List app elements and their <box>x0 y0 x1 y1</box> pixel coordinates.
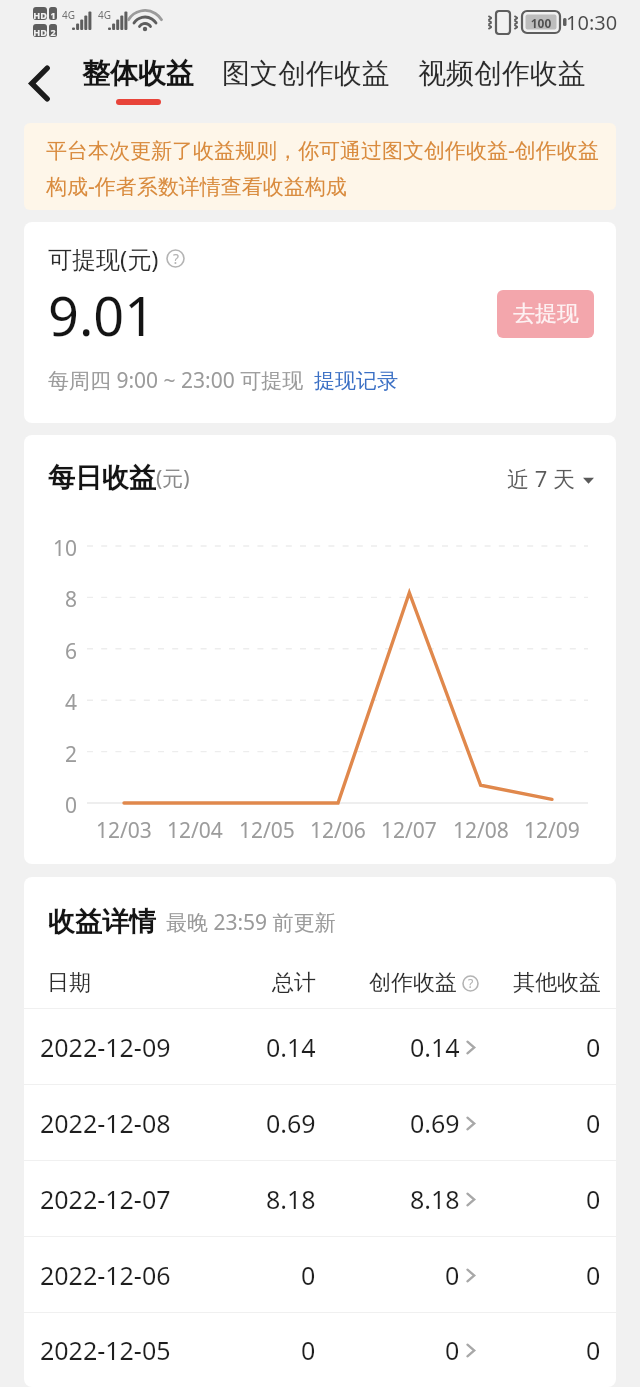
staticText: 2022-12-06 <box>40 1258 171 1292</box>
staticText: 视频创作收益 <box>418 56 586 91</box>
button[interactable]: 图文创作收益 <box>222 45 390 123</box>
staticText: 图文创作收益 <box>222 56 390 91</box>
button[interactable]: 2022-12-07 <box>24 1161 616 1236</box>
button[interactable]: 平台本次更新了收益规则，你可通过图文创作收益-创作收益 构成-作者系数详情查看收… <box>24 123 616 210</box>
button[interactable]: 近 7 天 <box>507 465 594 495</box>
staticText: 0 <box>586 1258 601 1292</box>
staticText: (元) <box>156 464 190 493</box>
button[interactable]: 2022-12-08 <box>24 1085 616 1160</box>
button[interactable]: 视频创作收益 <box>418 45 586 123</box>
button[interactable]: Help <box>166 249 185 268</box>
staticText: 2022-12-09 <box>40 1030 171 1064</box>
staticText: 9.01 <box>48 278 156 352</box>
staticText: 8.18 <box>266 1182 316 1216</box>
staticText: 0 <box>65 791 78 820</box>
staticText: 12/09 <box>524 816 580 845</box>
staticText: 日期 <box>47 969 91 997</box>
staticText: 100 <box>525 15 557 31</box>
staticText: 去提现 <box>513 300 579 328</box>
staticText: 12/03 <box>96 816 152 845</box>
staticText: 12/04 <box>167 816 223 845</box>
staticText: 0 <box>586 1106 601 1140</box>
staticText: 0 <box>445 1258 460 1292</box>
staticText: 整体收益 <box>82 56 194 91</box>
staticText: 0 <box>445 1333 460 1367</box>
staticText: 2 <box>49 26 57 38</box>
staticText: 0 <box>586 1182 601 1216</box>
staticText: 12/05 <box>239 816 295 845</box>
staticText: 0.14 <box>266 1030 316 1064</box>
staticText: 平台本次更新了收益规则，你可通过图文创作收益-创作收益 构成-作者系数详情查看收… <box>46 136 606 200</box>
staticText: 0 <box>301 1333 316 1367</box>
staticText: HD <box>33 9 47 21</box>
staticText: 2022-12-05 <box>40 1333 171 1367</box>
staticText: 其他收益 <box>513 969 601 997</box>
staticText: 0 <box>586 1030 601 1064</box>
staticText: 2022-12-08 <box>40 1106 171 1140</box>
staticText: 4 <box>65 688 78 717</box>
staticText: 4G <box>98 8 111 22</box>
staticText: 最晚 23:59 前更新 <box>166 908 336 937</box>
staticText: ? <box>173 249 179 268</box>
staticText: 12/08 <box>453 816 509 845</box>
button[interactable]: 2022-12-05 <box>24 1313 616 1387</box>
staticText: 总计 <box>272 969 316 997</box>
button[interactable]: Back <box>10 45 68 123</box>
staticText: 每日收益 <box>48 461 156 495</box>
staticText: 创作收益 <box>369 969 457 997</box>
staticText: 可提现(元) <box>48 242 159 275</box>
staticText: 0.69 <box>410 1106 460 1140</box>
staticText: 6 <box>65 637 78 666</box>
staticText: ? <box>468 975 474 992</box>
staticText: 提现记录 <box>314 368 398 394</box>
staticText: 10:30 <box>566 9 618 36</box>
button[interactable]: 提现记录 <box>314 368 398 394</box>
button[interactable]: 2022-12-09 <box>24 1009 616 1084</box>
staticText: 8 <box>65 585 78 614</box>
staticText: 2 <box>65 740 78 769</box>
staticText: 1 <box>49 9 57 21</box>
staticText: HD <box>33 26 47 38</box>
staticText: 10 <box>53 534 78 563</box>
button[interactable]: 去提现 <box>497 290 594 338</box>
staticText: 近 7 天 <box>507 463 576 493</box>
staticText: 0.14 <box>410 1030 460 1064</box>
staticText: 0 <box>586 1333 601 1367</box>
staticText: 每周四 9:00 ~ 23:00 可提现 <box>48 366 304 395</box>
staticText: 4G <box>62 8 75 22</box>
button[interactable]: 整体收益 <box>82 45 194 123</box>
staticText: 12/07 <box>381 816 437 845</box>
staticText: 收益详情 <box>48 905 156 939</box>
button[interactable]: Help <box>462 975 479 992</box>
staticText: 0.69 <box>266 1106 316 1140</box>
staticText: 8.18 <box>410 1182 460 1216</box>
staticText: 0 <box>301 1258 316 1292</box>
button[interactable]: 2022-12-06 <box>24 1237 616 1312</box>
staticText: 2022-12-07 <box>40 1182 171 1216</box>
staticText: 12/06 <box>310 816 366 845</box>
